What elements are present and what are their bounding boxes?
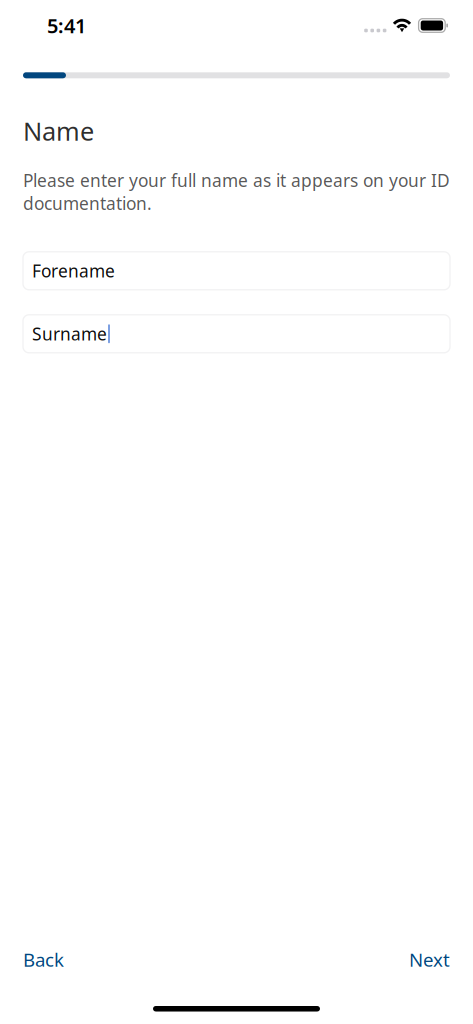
button[interactable]: Surname [23, 315, 450, 353]
button[interactable]: Next [387, 944, 450, 974]
button[interactable]: Forename [23, 252, 450, 290]
staticText: Next [409, 947, 450, 972]
staticText: 5:41 [47, 12, 86, 39]
staticText: Forename [32, 259, 115, 282]
staticText: Surname [32, 322, 107, 345]
staticText: Back [23, 947, 64, 972]
staticText: Please enter your full name as it appear… [23, 169, 450, 215]
button[interactable]: Back [23, 944, 86, 974]
staticText: Name [23, 114, 94, 148]
